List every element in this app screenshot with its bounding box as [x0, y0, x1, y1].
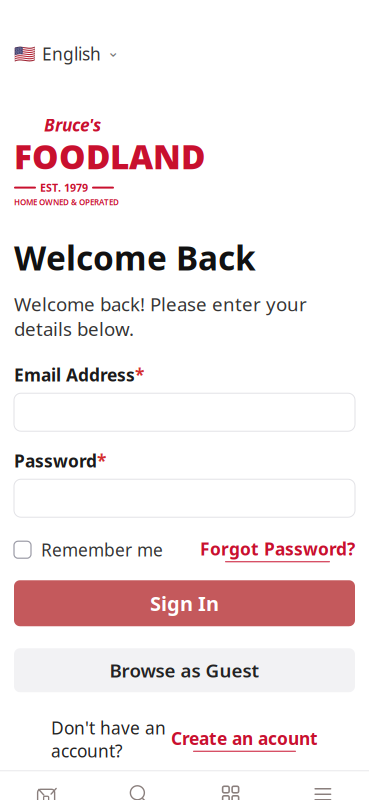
button[interactable]: Forgot Password? [200, 537, 355, 562]
button[interactable]: Menu [277, 778, 369, 800]
staticText: Forgot Password? [200, 537, 355, 560]
staticText: Remember me [41, 538, 163, 561]
staticText: Sign In [150, 590, 219, 617]
staticText: Welcome Back [14, 235, 256, 280]
button[interactable]: Remember me [14, 538, 163, 561]
staticText: English [42, 42, 101, 65]
button[interactable]: Home [0, 778, 92, 800]
staticText: EST. 1979 [40, 180, 88, 195]
button[interactable]: Search [92, 778, 184, 800]
staticText: ⌄ [107, 43, 119, 60]
button[interactable]: Create an acount [171, 727, 318, 752]
staticText: Browse as Guest [109, 658, 259, 683]
staticText: * [97, 449, 106, 472]
button[interactable]: Sign In [14, 580, 355, 626]
staticText: * [135, 363, 144, 386]
staticText: Password [14, 449, 97, 472]
staticText: Create an acount [171, 727, 318, 750]
button[interactable]: 🇺🇸 [14, 42, 119, 65]
staticText: 🇺🇸 [14, 44, 36, 64]
button[interactable]: Browse as Guest [14, 648, 355, 692]
staticText: Email Address [14, 363, 135, 386]
button[interactable]: Browse [184, 778, 277, 800]
staticText: FOODLAND [14, 134, 205, 179]
staticText: HOME OWNED & OPERATED [14, 197, 119, 207]
staticText: Welcome back! Please enter your details … [14, 292, 307, 341]
staticText: Don't have an account? [51, 716, 166, 762]
staticText: Bruce's [44, 113, 101, 136]
